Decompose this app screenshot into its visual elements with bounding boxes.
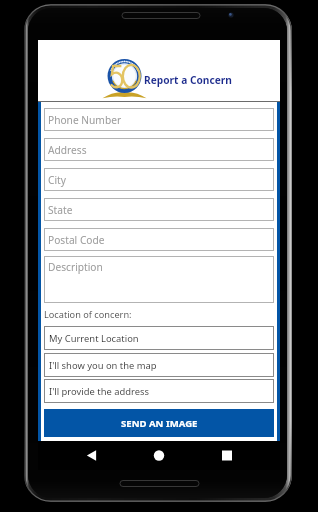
button[interactable]: Home	[139, 441, 179, 470]
staticText: SEND AN IMAGE	[121, 417, 198, 430]
staticText: Location of concern:	[44, 308, 132, 321]
button[interactable]: Description	[44, 256, 274, 303]
staticText: I'll provide the address	[49, 385, 149, 398]
staticText: City	[48, 173, 66, 187]
button[interactable]: Back	[71, 441, 111, 470]
button[interactable]: I'll show you on the map	[44, 353, 274, 377]
button[interactable]: Recent apps	[207, 441, 247, 470]
staticText: Address	[48, 143, 87, 157]
staticText: Description	[48, 260, 103, 274]
button[interactable]: Postal Code	[44, 228, 274, 251]
button[interactable]: State	[44, 198, 274, 221]
button[interactable]: My Current Location	[44, 326, 274, 350]
button[interactable]: Address	[44, 138, 274, 161]
staticText: Phone Number	[48, 113, 122, 127]
button[interactable]: SEND AN IMAGE	[44, 409, 274, 437]
staticText: I'll show you on the map	[49, 359, 157, 372]
staticText: State	[48, 203, 73, 217]
staticText: Postal Code	[48, 233, 105, 247]
staticText: My Current Location	[49, 332, 139, 345]
button[interactable]: City	[44, 168, 274, 191]
button[interactable]: I'll provide the address	[44, 379, 274, 403]
button[interactable]: Phone Number	[44, 108, 274, 131]
staticText: Report a Concern	[144, 73, 232, 87]
